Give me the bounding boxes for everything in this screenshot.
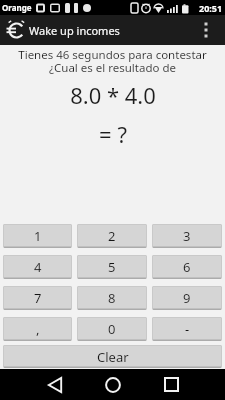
button[interactable]: 8 <box>77 286 147 310</box>
button[interactable]: Clear <box>3 345 222 368</box>
staticText: Clear <box>97 348 129 366</box>
staticText: 4 <box>34 258 42 276</box>
staticText: Tienes 46 segundos para contestar ¿Cual … <box>18 47 207 76</box>
staticText: 6 <box>183 258 191 276</box>
staticText: 9 <box>183 289 191 307</box>
button[interactable]: 2 <box>77 224 147 248</box>
staticText: = ? <box>99 119 127 149</box>
staticText: 1 <box>34 227 42 245</box>
staticText: 20:51 <box>199 2 223 14</box>
button[interactable]: 4 <box>3 255 72 279</box>
staticText: 0 <box>108 320 116 338</box>
button[interactable] <box>26 369 84 400</box>
button[interactable] <box>84 369 142 400</box>
staticText: Wake up incomes <box>29 23 120 38</box>
button[interactable]: 5 <box>77 255 147 279</box>
button[interactable] <box>199 15 225 45</box>
button[interactable]: 9 <box>152 286 222 310</box>
button[interactable]: , <box>3 317 72 341</box>
staticText: 7 <box>34 289 42 307</box>
button[interactable]: 0 <box>77 317 147 341</box>
button[interactable] <box>142 369 200 400</box>
staticText: Orange <box>2 2 32 13</box>
button[interactable]: - <box>152 317 222 341</box>
button[interactable]: 6 <box>152 255 222 279</box>
staticText: 8 <box>108 289 116 307</box>
staticText: 3 <box>183 227 191 245</box>
staticText: 5 <box>108 258 116 276</box>
staticText: 2 <box>108 227 116 245</box>
button[interactable]: 1 <box>3 224 72 248</box>
button[interactable]: 7 <box>3 286 72 310</box>
button[interactable]: 3 <box>152 224 222 248</box>
staticText: - <box>185 320 190 338</box>
staticText: 8.0 * 4.0 <box>70 80 156 110</box>
staticText: , <box>36 320 40 338</box>
